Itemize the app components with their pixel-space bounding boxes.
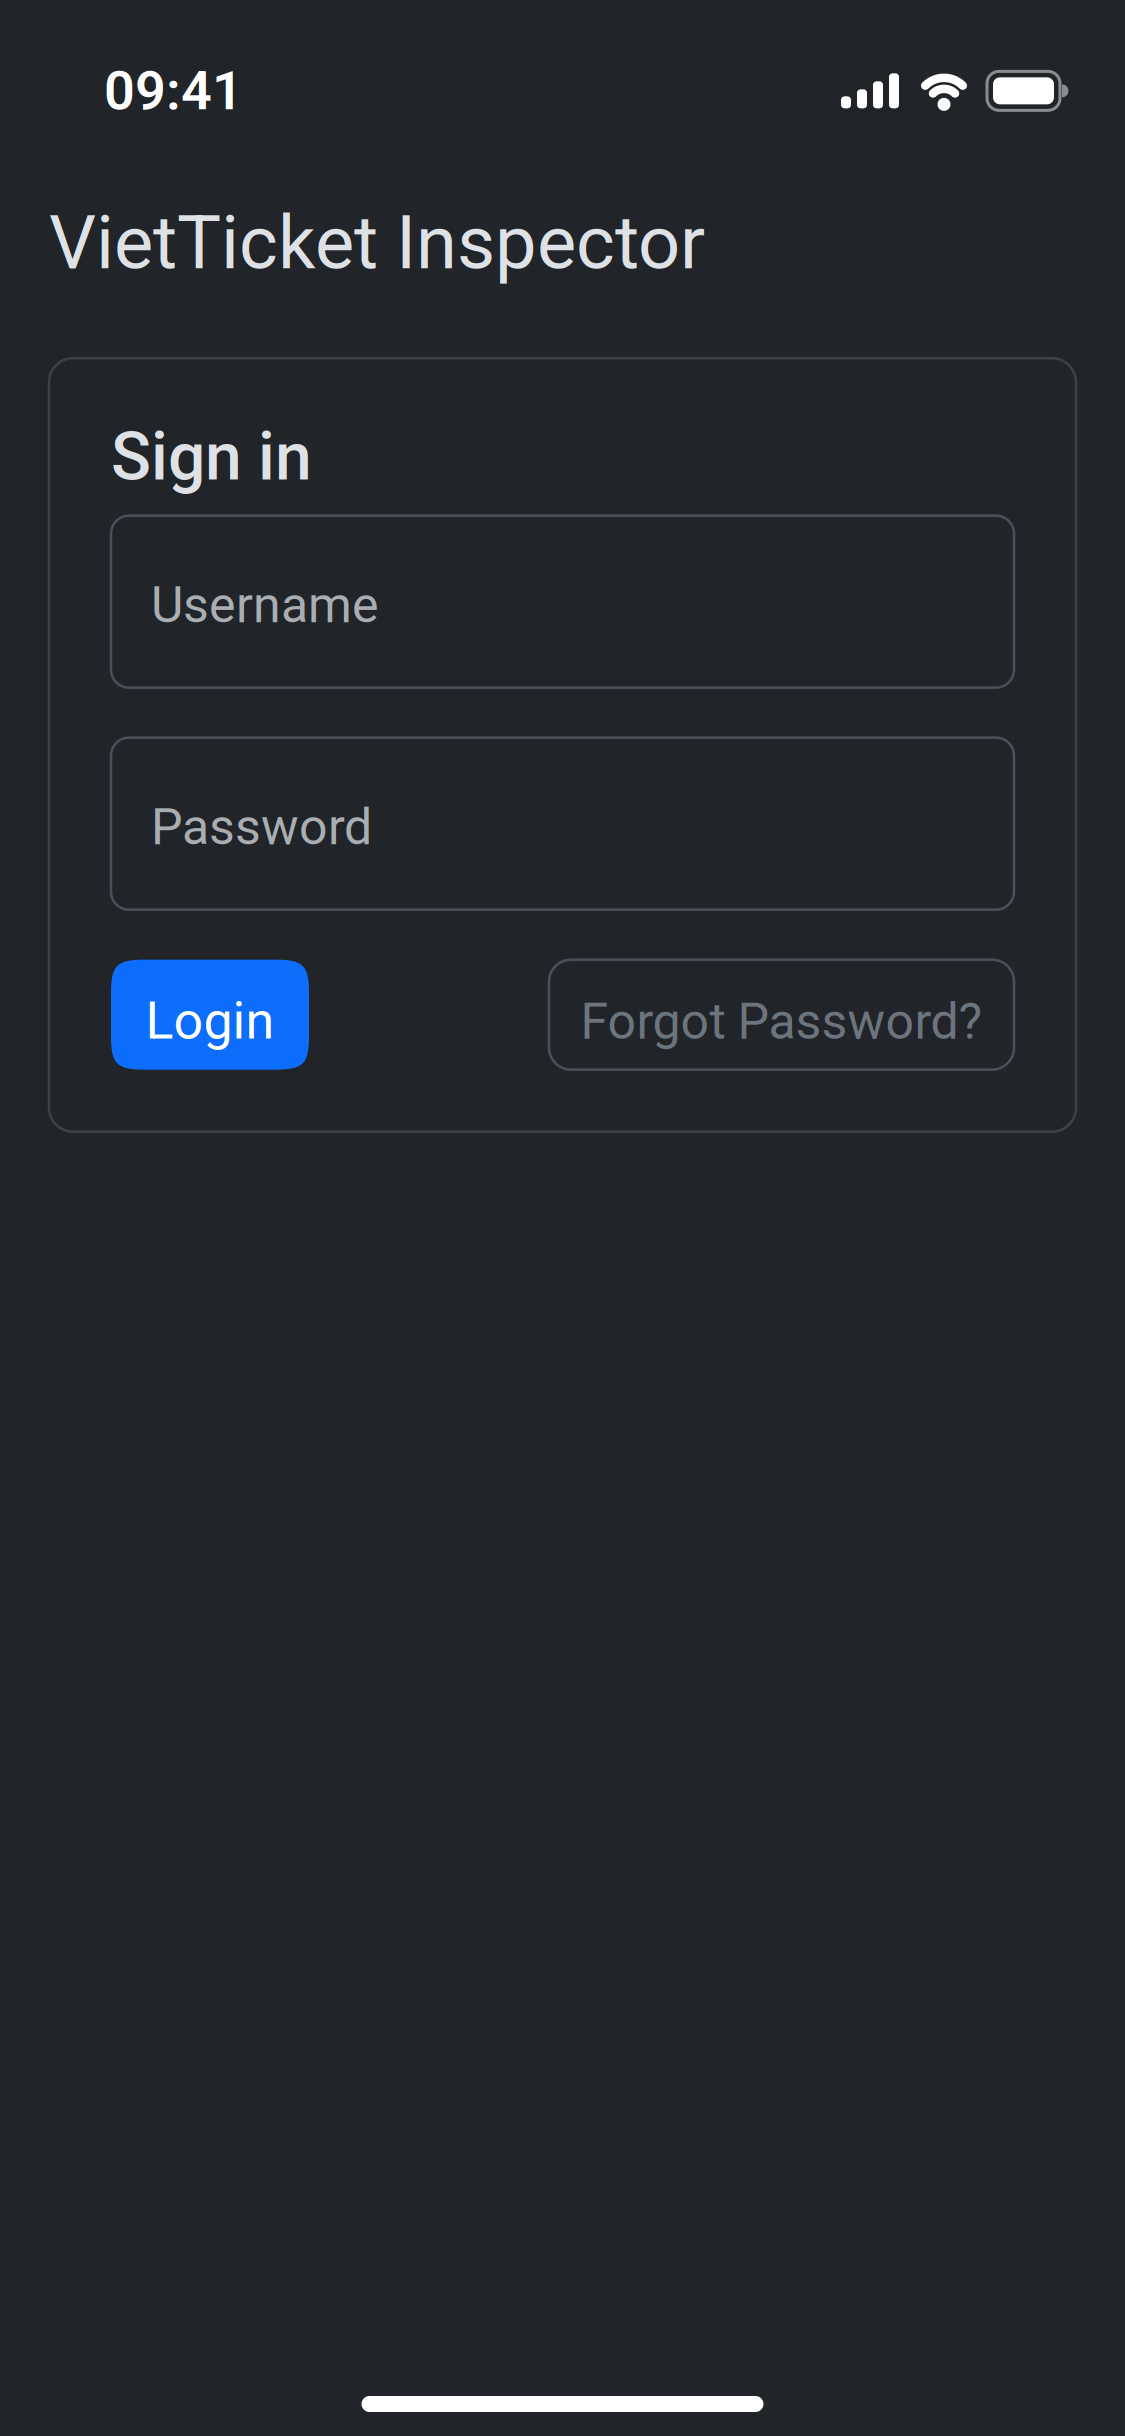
staticText: 09:41 (104, 60, 243, 122)
button[interactable]: Forgot Password? (549, 960, 1014, 1070)
staticText: Username (151, 577, 379, 634)
staticText: Password (151, 799, 372, 856)
staticText: Login (145, 991, 274, 1050)
staticText: Sign in (111, 419, 312, 495)
button[interactable]: Username (111, 516, 1014, 688)
button[interactable]: Login (111, 960, 309, 1070)
staticText: Forgot Password? (580, 993, 982, 1050)
staticText: VietTicket Inspector (49, 201, 705, 285)
button[interactable]: Password (111, 738, 1014, 910)
